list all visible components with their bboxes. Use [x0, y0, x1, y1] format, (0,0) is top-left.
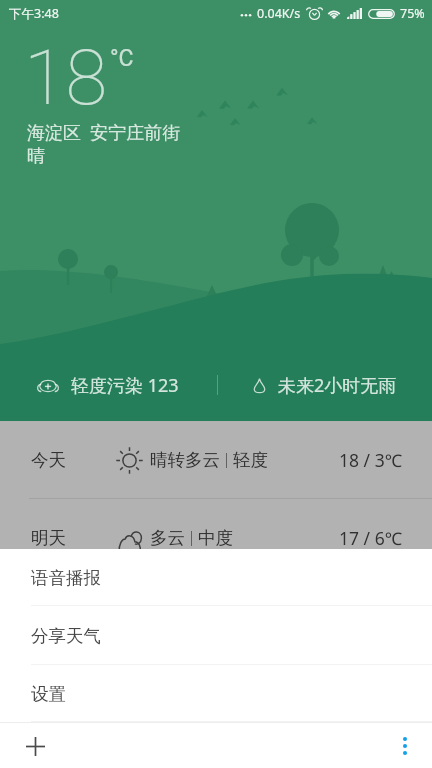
- staticText: 18 / 3℃: [339, 448, 403, 472]
- staticText: 语音播报: [31, 567, 101, 589]
- staticText: 0.04K/s: [257, 5, 301, 22]
- staticText: 轻度: [233, 449, 268, 471]
- staticText: °C: [110, 45, 134, 72]
- button[interactable]: 设置: [0, 665, 432, 722]
- staticText: 今天: [31, 449, 66, 471]
- button[interactable]: 未来2小时无雨: [254, 373, 397, 398]
- staticText: 多云: [150, 527, 185, 549]
- staticText: 明天: [31, 527, 66, 549]
- button[interactable]: 明天: [0, 499, 432, 577]
- staticText: 75%: [400, 5, 425, 22]
- staticText: 晴: [27, 145, 45, 168]
- staticText: 轻度污染 123: [71, 373, 179, 398]
- staticText: 17 / 6℃: [339, 526, 403, 550]
- staticText: 18: [24, 33, 108, 122]
- button[interactable]: 分享天气: [0, 606, 432, 665]
- button[interactable]: 今天: [0, 421, 432, 499]
- staticText: 下午3:48: [9, 5, 59, 22]
- staticText: 海淀区 安宁庄前街: [27, 120, 181, 145]
- button[interactable]: More options: [384, 725, 426, 767]
- staticText: 中度: [198, 527, 233, 549]
- staticText: 设置: [31, 683, 66, 705]
- button[interactable]: Add city: [14, 725, 56, 767]
- staticText: 晴转多云: [150, 449, 220, 471]
- button[interactable]: 轻度污染 123: [36, 373, 179, 398]
- button[interactable]: 语音播报: [0, 549, 432, 606]
- staticText: 未来2小时无雨: [278, 373, 397, 398]
- staticText: 分享天气: [31, 625, 101, 647]
